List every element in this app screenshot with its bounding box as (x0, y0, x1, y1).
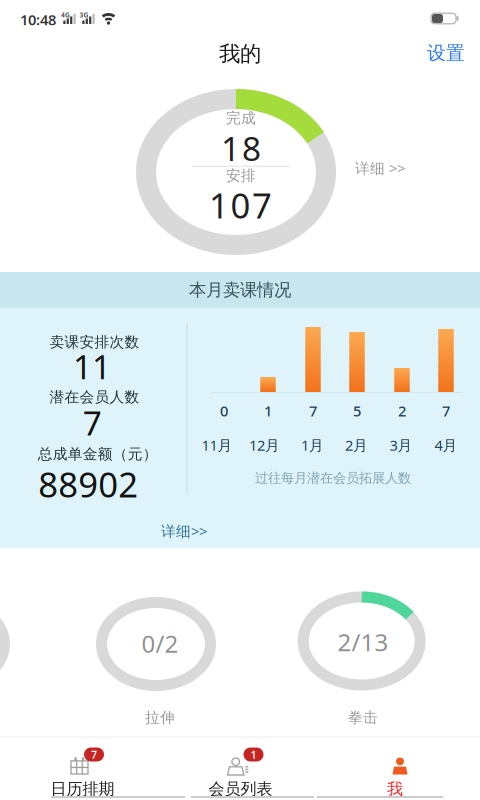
staticText: 完成 (226, 109, 256, 127)
staticText: 4G (61, 11, 70, 19)
staticText: 2月 (345, 435, 368, 455)
staticText: 11 (73, 344, 111, 388)
staticText: 拳击 (348, 709, 378, 727)
staticText: 107 (209, 182, 272, 228)
staticText: 总成单金额（元） (38, 445, 158, 463)
staticText: 设置 (427, 41, 465, 64)
staticText: 7 (91, 747, 97, 762)
staticText: 0 (220, 401, 228, 421)
staticText: 7 (442, 401, 450, 421)
button[interactable]: 1 (160, 737, 320, 800)
staticText: 5 (353, 401, 361, 421)
staticText: 12月 (249, 435, 280, 455)
staticText: 拉伸 (145, 709, 175, 727)
staticText: 1 (250, 747, 256, 762)
staticText: 1 (264, 401, 272, 421)
staticText: 我 (387, 779, 403, 799)
staticText: 11月 (201, 435, 232, 455)
staticText: 18 (221, 126, 261, 170)
button[interactable]: 我 (320, 737, 480, 800)
button[interactable]: 详细>> (152, 516, 216, 546)
staticText: 2 (398, 401, 406, 421)
staticText: 7 (83, 400, 102, 445)
staticText: 本月卖课情况 (189, 279, 291, 301)
staticText: 10:48 (20, 10, 56, 29)
staticText: 卖课安排次数 (50, 333, 140, 351)
staticText: 潜在会员人数 (50, 388, 140, 406)
staticText: 7 (309, 401, 317, 421)
staticText: 88902 (38, 461, 138, 507)
staticText: 2/13 (337, 626, 388, 658)
staticText: 会员列表 (208, 779, 272, 799)
staticText: 4月 (434, 435, 457, 455)
staticText: 详细 >> (355, 158, 405, 178)
staticText: 1月 (301, 435, 324, 455)
staticText: 过往每月潜在会员拓展人数 (255, 470, 411, 486)
staticText: 我的 (219, 41, 261, 67)
staticText: 0/2 (141, 628, 178, 659)
staticText: 3G (79, 11, 88, 19)
staticText: 详细>> (161, 521, 207, 541)
staticText: 日历排期 (50, 779, 114, 799)
staticText: 3月 (389, 435, 412, 455)
button[interactable]: 7 (0, 737, 160, 800)
button[interactable]: 详细 >> (345, 150, 415, 186)
button[interactable]: 设置 (416, 33, 476, 73)
staticText: 安排 (226, 166, 256, 184)
